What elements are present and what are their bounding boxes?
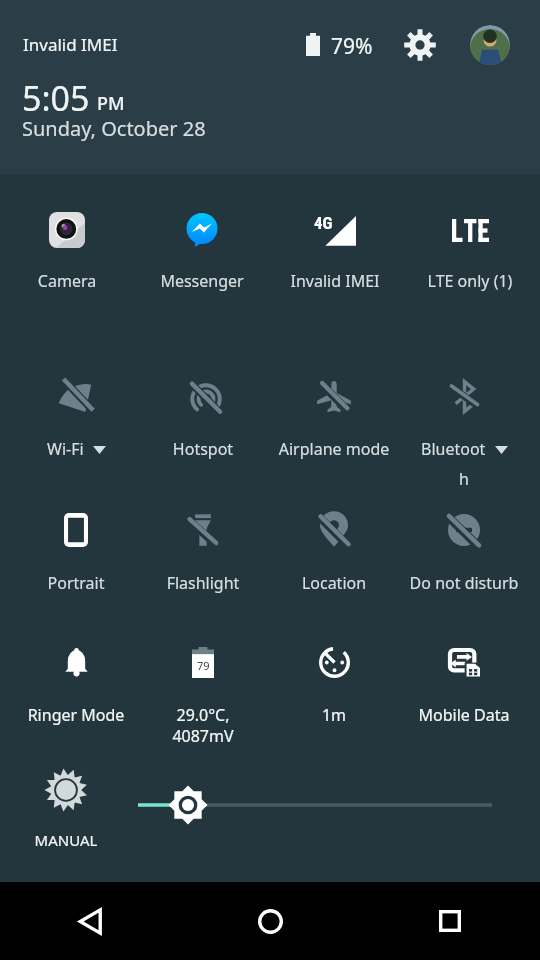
staticText: Mobile Data: [400, 704, 528, 726]
staticText: h: [459, 468, 469, 490]
staticText: Portrait: [12, 572, 140, 594]
button[interactable]: Hotspot: [139, 364, 267, 468]
staticText: 4G: [314, 213, 333, 233]
staticText: Airplane mode: [270, 438, 398, 460]
staticText: Wi-Fi: [47, 438, 84, 460]
staticText: 5:05: [22, 75, 90, 121]
button[interactable]: Messenger: [138, 196, 266, 300]
staticText: PM: [97, 91, 125, 116]
staticText: Bluetoot: [421, 438, 486, 460]
staticText: Invalid IMEI: [271, 270, 399, 292]
button[interactable]: Home: [180, 882, 360, 960]
button[interactable]: Ringer Mode: [12, 630, 140, 734]
button[interactable]: Bluetoot: [400, 364, 528, 468]
button[interactable]: Location: [270, 498, 398, 602]
button[interactable]: Brightness: [138, 785, 492, 825]
staticText: Camera: [3, 270, 131, 292]
button[interactable]: Recent apps: [360, 882, 540, 960]
button[interactable]: Camera: [3, 196, 131, 300]
button[interactable]: Settings: [404, 29, 436, 61]
button[interactable]: MANUAL: [2, 760, 130, 860]
button[interactable]: Mobile Data: [400, 630, 528, 734]
staticText: Ringer Mode: [12, 704, 140, 726]
staticText: 79: [197, 658, 210, 673]
staticText: Sunday, October 28: [22, 115, 206, 142]
button[interactable]: Portrait: [12, 498, 140, 602]
button[interactable]: Wi-Fi: [12, 364, 140, 468]
button[interactable]: Back: [0, 882, 180, 960]
staticText: LTE only (1): [406, 270, 534, 292]
staticText: Hotspot: [139, 438, 267, 460]
button[interactable]: 4G: [271, 196, 399, 300]
button[interactable]: Airplane mode: [270, 364, 398, 468]
staticText: Invalid IMEI: [23, 33, 118, 56]
button[interactable]: Flashlight: [139, 498, 267, 602]
staticText: 1m: [270, 704, 398, 726]
button[interactable]: Do not disturb: [400, 498, 528, 602]
staticText: MANUAL: [2, 830, 130, 850]
staticText: Flashlight: [139, 572, 267, 594]
button[interactable]: 79: [139, 630, 267, 734]
staticText: Messenger: [138, 270, 266, 292]
button[interactable]: User profile: [470, 25, 510, 65]
staticText: 79%: [331, 32, 373, 61]
button[interactable]: 1m: [270, 630, 398, 734]
button[interactable]: LTE only (1): [406, 196, 534, 300]
staticText: 29.0°C, 4087mV: [139, 704, 267, 747]
staticText: Location: [270, 572, 398, 594]
staticText: Do not disturb: [400, 572, 528, 594]
